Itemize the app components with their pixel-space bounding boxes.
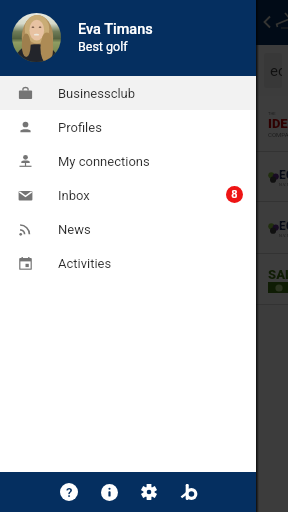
button[interactable]: Help: [59, 482, 79, 502]
staticText: COMPANY: [268, 131, 288, 138]
staticText: ecommerce: [270, 62, 282, 80]
button[interactable]: Info: [99, 482, 119, 502]
button[interactable]: Eva Timans: [0, 0, 256, 76]
staticText: ?: [66, 485, 73, 500]
staticText: Best golf: [78, 39, 128, 54]
staticText: My connections: [58, 154, 150, 169]
staticText: ECOM: [279, 219, 288, 233]
staticText: Profiles: [58, 120, 102, 135]
button[interactable]: Profiles: [0, 110, 256, 144]
staticText: Businessclub: [58, 86, 136, 101]
staticText: THE: [268, 111, 276, 116]
staticText: Activities: [58, 256, 112, 271]
staticText: News: [58, 222, 91, 237]
staticText: IDEAS: [268, 116, 288, 131]
staticText: N.V. NEDERLAND: [279, 233, 288, 238]
button[interactable]: Businessclub: [0, 76, 256, 110]
button[interactable]: Brand: [180, 482, 200, 502]
button[interactable]: Activities: [0, 246, 256, 280]
staticText: Eva Timans: [78, 21, 153, 38]
staticText: N.V. NEDERLAND: [279, 182, 288, 187]
button[interactable]: News: [0, 212, 256, 246]
button[interactable]: My connections: [0, 144, 256, 178]
staticText: ECOM: [279, 168, 288, 182]
staticText: 8: [231, 188, 238, 201]
button[interactable]: Inbox: [0, 178, 256, 212]
button[interactable]: Settings: [139, 482, 159, 502]
staticText: SALES: [268, 267, 288, 282]
staticText: Inbox: [58, 188, 90, 203]
